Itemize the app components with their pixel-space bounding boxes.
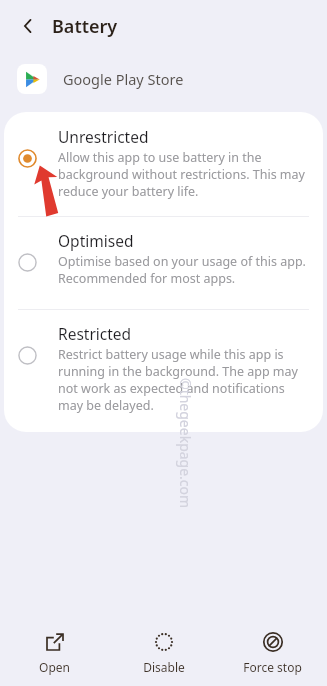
button[interactable]: Google Play Store [0, 52, 327, 106]
button[interactable]: Disable [109, 626, 218, 681]
button[interactable]: Back [10, 8, 46, 44]
staticText: Open [39, 659, 70, 675]
staticText: Force stop [243, 659, 302, 675]
staticText: ©thegeekpage.com [176, 378, 195, 509]
other: Disable [154, 632, 174, 652]
staticText: Optimised [58, 230, 134, 251]
button[interactable]: Open [0, 626, 109, 681]
button[interactable]: Restricted [4, 310, 323, 432]
staticText: Google Play Store [63, 69, 184, 89]
button[interactable]: Optimised [4, 217, 323, 309]
staticText: Restricted [58, 323, 132, 344]
staticText: Unrestricted [58, 126, 149, 147]
staticText: Disable [143, 659, 185, 675]
staticText: Optimise based on your usage of this app… [58, 253, 309, 287]
staticText: Restrict battery usage while this app is… [58, 346, 309, 414]
other: Force stop [263, 632, 283, 652]
button[interactable]: Unrestricted [4, 112, 323, 216]
other: Open [45, 632, 65, 652]
button[interactable]: Force stop [218, 626, 327, 681]
staticText: Battery [52, 14, 118, 39]
staticText: Allow this app to use battery in the bac… [58, 149, 309, 200]
